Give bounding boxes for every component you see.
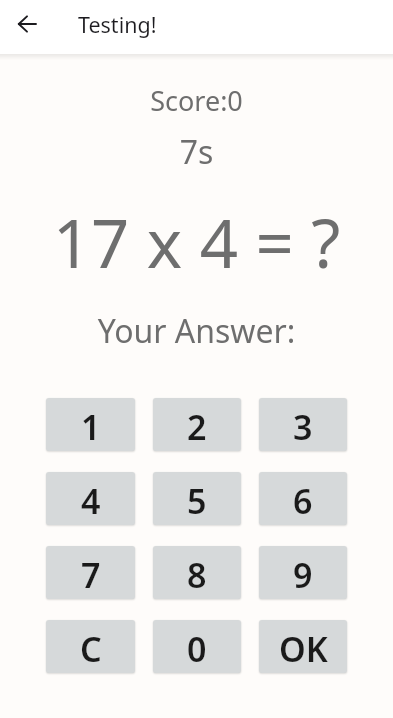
staticText: Score:0 — [0, 82, 393, 119]
staticText: 5 — [187, 478, 207, 524]
button[interactable]: OK — [259, 620, 347, 673]
staticText: 6 — [293, 478, 313, 524]
button[interactable]: 2 — [153, 398, 241, 451]
button[interactable]: Back — [3, 0, 51, 48]
staticText: C — [80, 626, 102, 672]
staticText: 7s — [0, 130, 393, 174]
button[interactable]: 4 — [46, 472, 135, 525]
staticText: 3 — [293, 404, 313, 450]
staticText: 1 — [81, 404, 101, 450]
staticText: 4 — [81, 478, 101, 524]
staticText: OK — [279, 626, 328, 672]
staticText: 2 — [187, 404, 207, 450]
button[interactable]: 7 — [46, 546, 135, 599]
staticText: 17 x 4 = ? — [0, 196, 393, 287]
staticText: 0 — [187, 626, 207, 672]
button[interactable]: 8 — [153, 546, 241, 599]
staticText: 9 — [293, 552, 313, 598]
staticText: Testing! — [78, 10, 157, 39]
button[interactable]: 9 — [259, 546, 347, 599]
button[interactable]: 6 — [259, 472, 347, 525]
button[interactable]: 1 — [46, 398, 135, 451]
staticText: 8 — [187, 552, 207, 598]
staticText: 7 — [81, 552, 101, 598]
button[interactable]: C — [46, 620, 135, 673]
button[interactable]: 3 — [259, 398, 347, 451]
button[interactable]: 0 — [153, 620, 241, 673]
staticText: Your Answer: — [0, 309, 393, 353]
button[interactable]: 5 — [153, 472, 241, 525]
